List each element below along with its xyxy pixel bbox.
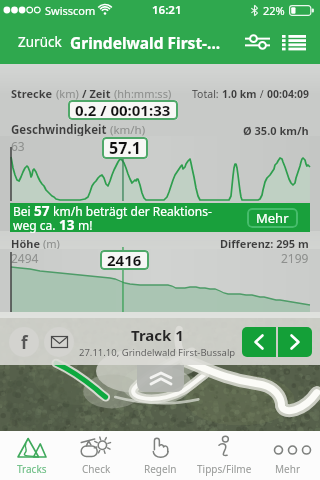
staticText: (km): [56, 86, 82, 101]
staticText: 00:04:09: [267, 87, 309, 101]
staticText: Strecke: [11, 86, 56, 101]
staticText: / Zeit: [82, 86, 114, 101]
staticText: Regeln: [144, 462, 177, 476]
staticText: 2494: [11, 250, 39, 266]
button[interactable]: Zurück: [0, 25, 68, 59]
staticText: f: [21, 331, 28, 354]
staticText: 57.1: [109, 137, 141, 159]
staticText: 16:21: [152, 2, 182, 18]
button[interactable]: Mehr: [247, 208, 298, 228]
staticText: (hh:mm:ss): [114, 86, 172, 101]
staticText: Geschwindigkeit: [11, 122, 110, 138]
staticText: 22%: [263, 3, 285, 18]
button[interactable]: Einstellungen: [241, 25, 274, 59]
staticText: Differenz: 295 m: [220, 236, 309, 251]
button[interactable]: Liste: [278, 25, 320, 60]
staticText: m!: [75, 217, 93, 233]
staticText: Ø 35.0 km/h: [243, 123, 309, 138]
button[interactable]: Vorheriger Track: [242, 327, 276, 357]
staticText: Mehr: [275, 462, 301, 476]
staticText: km/h beträgt der Reaktions-: [50, 203, 212, 219]
staticText: 2416: [107, 250, 142, 270]
staticText: 13: [59, 216, 75, 234]
button[interactable]: Check: [64, 431, 128, 480]
staticText: Track 1: [131, 325, 184, 345]
staticText: Mehr: [256, 209, 289, 227]
staticText: Tracks: [17, 462, 47, 476]
staticText: Total:: [192, 87, 222, 101]
staticText: Höhe: [11, 236, 43, 251]
staticText: 1.0 km: [222, 87, 257, 101]
staticText: Bei: [13, 203, 34, 219]
staticText: Zurück: [18, 33, 62, 51]
button[interactable]: Facebook teilen: [9, 327, 39, 357]
staticText: Grindelwald First-...: [70, 32, 221, 53]
button[interactable]: Regeln: [128, 431, 192, 480]
button[interactable]: E-Mail senden: [44, 327, 74, 357]
button[interactable]: Mehr: [256, 431, 320, 480]
staticText: 63: [11, 138, 25, 154]
staticText: 0.2 / 00:01:33: [75, 100, 171, 120]
staticText: /: [257, 87, 267, 101]
staticText: Tipps/Filme: [197, 462, 252, 476]
staticText: 57: [34, 202, 50, 220]
staticText: (m): [43, 236, 60, 251]
staticText: Check: [82, 462, 111, 476]
button[interactable]: Tracks: [0, 431, 64, 480]
staticText: weg ca.: [13, 217, 59, 233]
staticText: Swisscom: [45, 3, 96, 18]
button[interactable]: Tipps/Filme: [192, 431, 256, 480]
button[interactable]: Nächster Track: [278, 327, 312, 357]
button[interactable]: Karte aufklappen: [137, 365, 184, 392]
staticText: 27.11.10, Grindelwald First-Bussalp: [79, 346, 236, 359]
staticText: (km/h): [110, 122, 146, 138]
staticText: 2199: [281, 250, 309, 266]
